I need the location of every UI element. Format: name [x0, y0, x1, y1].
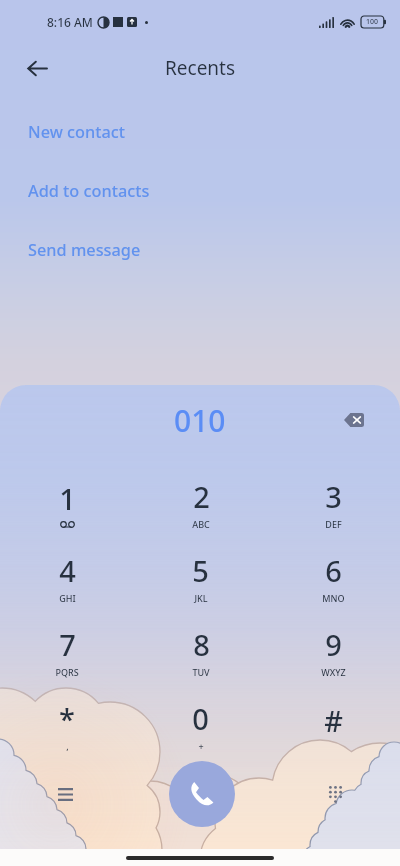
staticText: TUV	[192, 666, 210, 678]
staticText: 5	[192, 551, 209, 590]
staticText: 3	[325, 477, 342, 516]
staticText: PQRS	[55, 666, 79, 678]
button[interactable]: Send message	[0, 220, 400, 279]
button[interactable]: Dialpad	[313, 772, 357, 816]
staticText: 0	[192, 699, 209, 738]
staticText: JKL	[194, 592, 208, 604]
staticText: +	[198, 740, 204, 752]
button[interactable]: Call	[169, 761, 235, 827]
button[interactable]: 6	[267, 543, 400, 617]
staticText: 9	[325, 625, 342, 664]
staticText: Add to contacts	[28, 180, 150, 202]
staticText: 100	[366, 17, 379, 27]
button[interactable]: #	[267, 691, 400, 765]
staticText: 010	[174, 400, 226, 441]
staticText: 8	[193, 625, 210, 664]
staticText: 7	[59, 625, 76, 664]
staticText: ,	[66, 740, 69, 752]
button[interactable]: Back	[15, 46, 59, 90]
staticText: GHI	[59, 592, 76, 604]
button[interactable]: 0	[134, 691, 267, 765]
button[interactable]: New contact	[0, 102, 400, 161]
staticText: #	[324, 701, 343, 740]
staticText: New contact	[28, 121, 126, 143]
staticText: DEF	[325, 518, 342, 530]
staticText: Recents	[165, 55, 236, 81]
staticText: Send message	[28, 239, 141, 261]
button[interactable]: 8	[134, 617, 267, 691]
staticText: WXYZ	[321, 666, 346, 678]
button[interactable]: *	[0, 691, 134, 765]
staticText: 2	[193, 477, 210, 516]
button[interactable]: 5	[134, 543, 267, 617]
button[interactable]: More options	[43, 772, 87, 816]
button[interactable]: Add to contacts	[0, 161, 400, 220]
button[interactable]: 3	[267, 469, 400, 543]
staticText: *	[59, 699, 75, 738]
button[interactable]: 2	[134, 469, 267, 543]
staticText: 4	[59, 551, 76, 590]
staticText: MNO	[322, 592, 345, 604]
button[interactable]: 4	[0, 543, 134, 617]
staticText: 1	[59, 479, 76, 518]
staticText: ABC	[192, 518, 210, 530]
staticText: 6	[325, 551, 342, 590]
button[interactable]: 9	[267, 617, 400, 691]
button[interactable]: 7	[0, 617, 134, 691]
button[interactable]: Backspace	[332, 398, 376, 442]
button[interactable]: 1	[0, 469, 134, 543]
staticText: 8:16 AM	[47, 14, 93, 30]
